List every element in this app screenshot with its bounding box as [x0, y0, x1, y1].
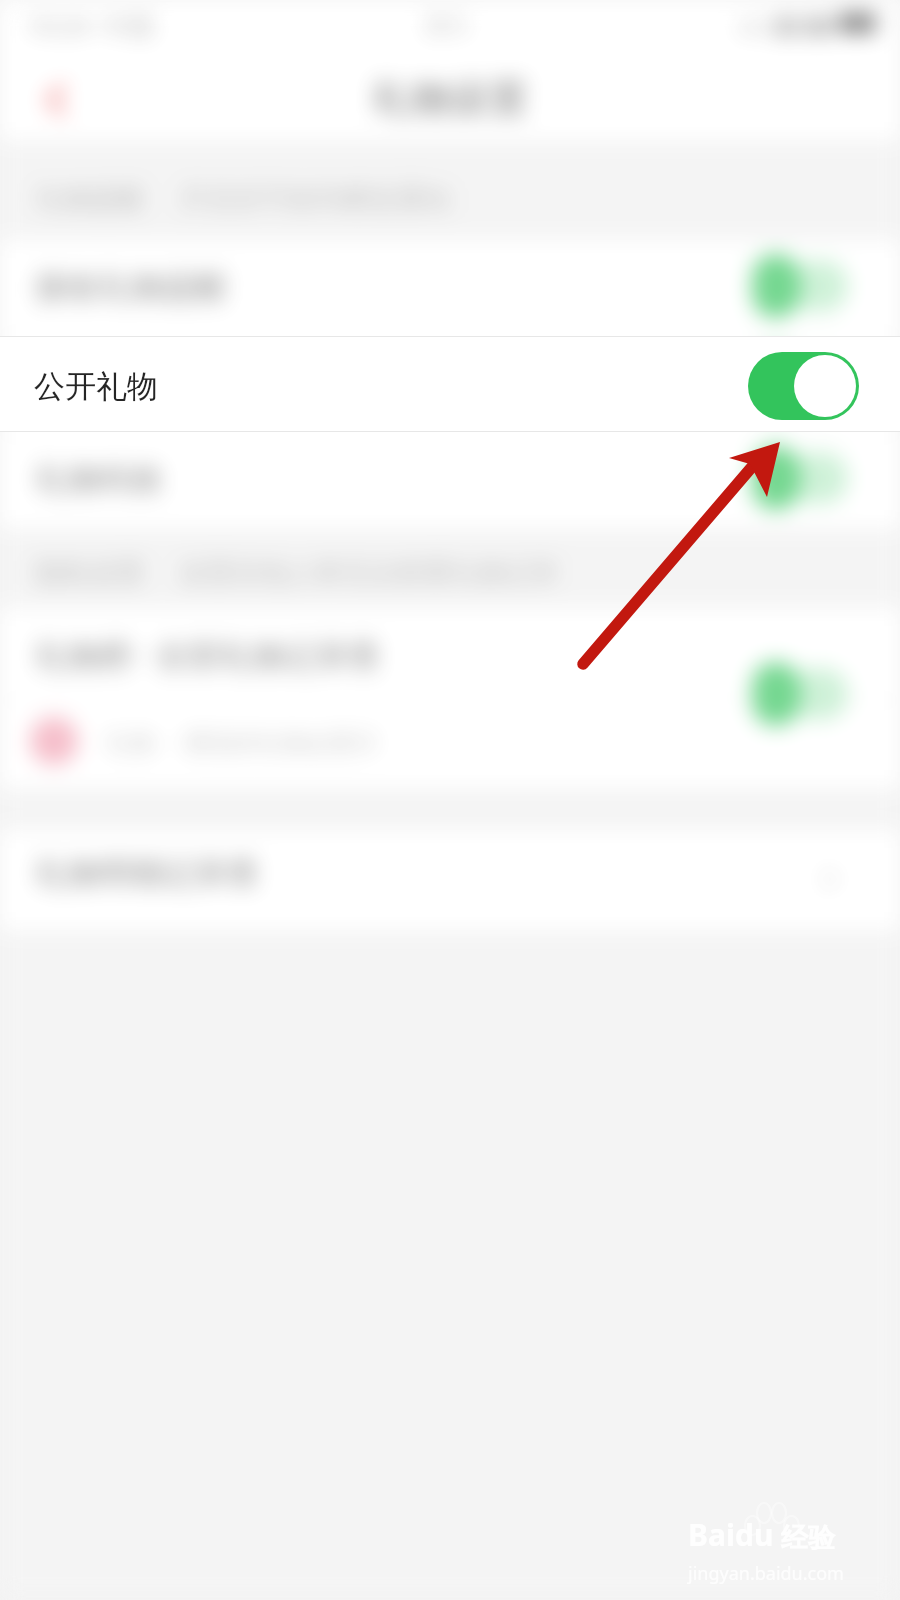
button[interactable] — [0, 700, 900, 788]
staticText: du — [735, 1514, 774, 1555]
button[interactable]: Back — [36, 80, 76, 120]
staticText: 礼物 · 赠送的礼物会显示 — [106, 725, 378, 758]
button[interactable] — [0, 240, 900, 336]
button[interactable] — [0, 608, 900, 700]
staticText: 礼物提醒 — [36, 182, 144, 216]
button[interactable] — [0, 432, 900, 528]
staticText: 公开礼物 — [35, 363, 163, 403]
staticText: Bai — [688, 1514, 735, 1555]
button[interactable] — [0, 830, 900, 930]
staticText: 礼物榜 · 全部礼物记录查 — [35, 633, 381, 677]
staticText: 接收礼物提醒 — [35, 267, 227, 307]
staticText: 礼物设置 — [372, 74, 528, 123]
staticText: jingyan.baidu.com — [688, 1561, 844, 1586]
staticText: 公开礼物 — [34, 367, 158, 406]
button[interactable]: 公开礼物 — [0, 336, 900, 432]
staticText: 经验 — [781, 1521, 835, 1555]
button[interactable]: Back — [26, 70, 86, 130]
staticText: 礼物特效 — [35, 459, 163, 499]
staticText: 礼物明细记录查 — [35, 853, 259, 893]
